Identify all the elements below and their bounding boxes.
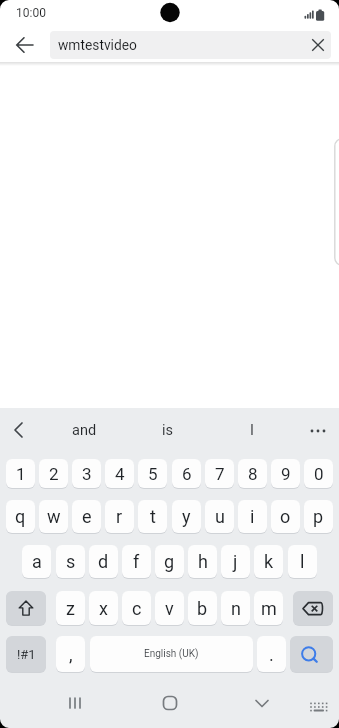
button[interactable]: !#1 (6, 636, 46, 672)
button[interactable]: z (56, 591, 85, 625)
button[interactable] (50, 31, 331, 59)
button[interactable]: 0 (304, 459, 333, 488)
button[interactable]: 4 (105, 459, 134, 488)
staticText: n (231, 598, 241, 619)
staticText: and (72, 422, 97, 439)
staticText: d (98, 551, 109, 572)
button[interactable] (304, 694, 334, 722)
button[interactable]: v (155, 591, 184, 625)
button[interactable]: g (155, 545, 184, 578)
staticText: b (197, 598, 208, 619)
button[interactable]: and (54, 416, 114, 444)
staticText: m (261, 598, 277, 619)
button[interactable]: 1 (6, 459, 35, 488)
button[interactable]: w (39, 500, 68, 533)
staticText: 0 (314, 464, 324, 484)
button[interactable]: , (56, 636, 85, 672)
staticText: a (32, 551, 42, 572)
button[interactable]: 5 (138, 459, 167, 488)
staticText: q (15, 506, 26, 527)
button[interactable]: 3 (72, 459, 101, 488)
staticText: l (300, 551, 305, 572)
staticText: i (250, 506, 255, 527)
staticText: . (269, 644, 274, 665)
staticText: 1 (16, 464, 26, 484)
staticText: w (47, 506, 61, 527)
button[interactable] (6, 591, 46, 625)
button[interactable]: t (138, 500, 167, 533)
staticText: f (133, 551, 140, 572)
button[interactable]: e (72, 500, 101, 533)
button[interactable]: d (89, 545, 118, 578)
staticText: p (313, 506, 324, 527)
button[interactable]: c (122, 591, 151, 625)
button[interactable]: j (221, 545, 250, 578)
button[interactable]: o (271, 500, 300, 533)
staticText: , (69, 644, 73, 665)
staticText: y (182, 506, 191, 527)
staticText: c (132, 598, 142, 619)
staticText: o (280, 506, 291, 527)
button[interactable]: h (188, 545, 217, 578)
staticText: j (233, 551, 238, 572)
button[interactable]: u (205, 500, 234, 533)
button[interactable] (303, 30, 333, 60)
staticText: k (264, 551, 274, 572)
button[interactable]: 7 (205, 459, 234, 488)
button[interactable]: . (257, 636, 286, 672)
button[interactable]: i (238, 500, 267, 533)
button[interactable]: I (222, 416, 282, 444)
button[interactable]: a (22, 545, 51, 578)
staticText: z (66, 598, 75, 619)
staticText: e (82, 506, 92, 527)
staticText: v (165, 598, 174, 619)
button[interactable]: s (56, 545, 85, 578)
button[interactable]: 9 (271, 459, 300, 488)
staticText: 8 (248, 464, 258, 484)
button[interactable]: n (221, 591, 250, 625)
button[interactable] (9, 29, 41, 61)
staticText: 7 (215, 464, 225, 484)
button[interactable] (293, 591, 333, 625)
staticText: 4 (115, 464, 125, 484)
staticText: 9 (281, 464, 291, 484)
button[interactable]: x (89, 591, 118, 625)
button[interactable]: b (188, 591, 217, 625)
staticText: 10:00 (16, 6, 46, 20)
button[interactable]: r (105, 500, 134, 533)
staticText: s (66, 551, 76, 572)
button[interactable]: 8 (238, 459, 267, 488)
staticText: !#1 (17, 647, 36, 662)
staticText: h (198, 551, 208, 572)
button[interactable]: p (304, 500, 333, 533)
button[interactable]: k (254, 545, 283, 578)
staticText: r (116, 506, 123, 527)
button[interactable]: 2 (39, 459, 68, 488)
staticText: English (UK) (144, 648, 199, 660)
button[interactable] (4, 416, 32, 444)
button[interactable]: q (6, 500, 35, 533)
button[interactable] (59, 687, 91, 719)
button[interactable]: y (172, 500, 201, 533)
staticText: I (250, 422, 254, 439)
staticText: 5 (148, 464, 158, 484)
button[interactable]: English (UK) (90, 636, 253, 672)
button[interactable]: f (122, 545, 151, 578)
staticText: g (164, 551, 175, 572)
button[interactable] (290, 636, 333, 672)
button[interactable] (304, 416, 332, 444)
button[interactable]: m (254, 591, 283, 625)
button[interactable] (246, 687, 278, 719)
staticText: 6 (182, 464, 192, 484)
staticText: t (150, 506, 156, 527)
button[interactable] (154, 687, 186, 719)
staticText: is (162, 422, 174, 439)
staticText: 3 (82, 464, 92, 484)
staticText: u (215, 506, 225, 527)
staticText: 2 (49, 464, 59, 484)
button[interactable]: 6 (172, 459, 201, 488)
button[interactable]: is (138, 416, 198, 444)
staticText: wmtestvideo (58, 37, 137, 53)
button[interactable]: l (288, 545, 317, 578)
staticText: x (99, 598, 108, 619)
